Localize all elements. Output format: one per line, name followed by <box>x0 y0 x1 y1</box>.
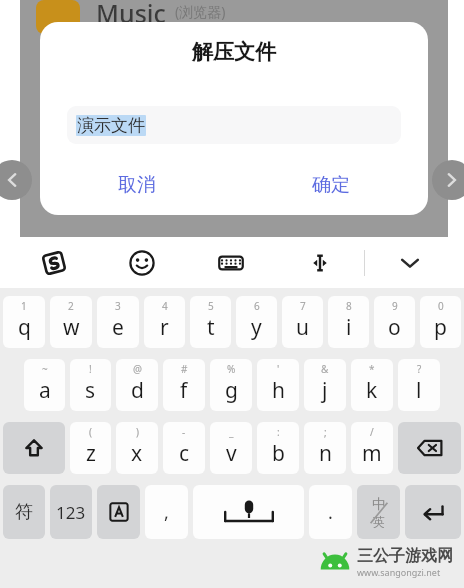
staticText: v <box>226 439 237 468</box>
button[interactable]: 4 <box>144 296 185 348</box>
staticText: Music <box>96 0 166 30</box>
button[interactable]: Delete <box>398 422 461 474</box>
button[interactable]: 3 <box>97 296 139 348</box>
button[interactable]: 7 <box>282 296 323 348</box>
staticText: e <box>112 313 124 342</box>
button[interactable]: 6 <box>236 296 277 348</box>
button[interactable]: Next <box>432 160 464 200</box>
button[interactable]: * <box>351 359 393 411</box>
staticText: u <box>296 313 309 342</box>
button[interactable]: Enter <box>405 485 461 539</box>
staticText: (浏览器) <box>175 2 226 21</box>
button[interactable]: Language <box>97 485 140 539</box>
button[interactable]: 取消 <box>40 160 234 210</box>
button[interactable]: _ <box>210 422 252 474</box>
staticText: 三公子游戏网 <box>357 546 453 566</box>
button[interactable]: ; <box>304 422 346 474</box>
staticText: 中 <box>372 496 386 514</box>
staticText: w <box>63 313 80 342</box>
staticText: c <box>179 439 190 468</box>
button[interactable]: 符 <box>3 485 45 539</box>
staticText: x <box>131 439 143 468</box>
staticText: y <box>251 313 262 342</box>
staticText: # <box>181 362 188 376</box>
staticText: ; <box>324 425 327 439</box>
button[interactable]: 9 <box>374 296 415 348</box>
button[interactable]: 确定 <box>234 160 428 210</box>
button[interactable]: ? <box>398 359 440 411</box>
staticText: g <box>225 376 238 405</box>
button[interactable]: 1 <box>3 296 45 348</box>
staticText: 演示文件 <box>77 115 145 136</box>
staticText: 取消 <box>118 173 156 197</box>
staticText: 8 <box>346 299 352 313</box>
button[interactable]: ~ <box>24 359 65 411</box>
staticText: ~ <box>42 362 48 376</box>
staticText: p <box>434 313 447 342</box>
staticText: k <box>366 376 378 405</box>
button[interactable]: Sogou input <box>10 238 98 288</box>
staticText: 2 <box>68 299 74 313</box>
button[interactable]: Emoji <box>98 238 186 288</box>
staticText: b <box>272 439 285 468</box>
button[interactable]: Previous <box>0 160 32 200</box>
button[interactable]: & <box>304 359 346 411</box>
button[interactable]: @ <box>116 359 158 411</box>
staticText: @ <box>133 362 142 376</box>
button[interactable]: 演示文件 <box>67 106 401 144</box>
staticText: j <box>322 376 328 405</box>
button[interactable]: ' <box>257 359 299 411</box>
staticText: 9 <box>392 299 398 313</box>
button[interactable]: ) <box>116 422 158 474</box>
button[interactable]: Chinese English <box>357 485 400 539</box>
staticText: l <box>416 376 422 405</box>
staticText: _ <box>229 425 234 439</box>
button[interactable]: Hide keyboard <box>365 238 454 288</box>
staticText: q <box>18 313 31 342</box>
staticText: * <box>369 362 375 376</box>
staticText: 5 <box>208 299 214 313</box>
staticText: h <box>272 376 285 405</box>
staticText: 确定 <box>312 173 350 197</box>
staticText: f <box>180 376 188 405</box>
staticText: www.sangongzi.net <box>357 566 441 578</box>
staticText: z <box>86 439 96 468</box>
staticText: 0 <box>438 299 444 313</box>
staticText: a <box>39 376 51 405</box>
staticText: : <box>277 425 280 439</box>
staticText: - <box>182 425 186 439</box>
button[interactable]: ! <box>70 359 111 411</box>
button[interactable]: Move cursor <box>275 238 364 288</box>
button[interactable]: ( <box>70 422 111 474</box>
staticText: % <box>227 362 236 376</box>
staticText: 6 <box>254 299 260 313</box>
staticText: 3 <box>115 299 121 313</box>
staticText: ? <box>417 362 422 376</box>
staticText: 符 <box>15 501 33 524</box>
staticText: r <box>160 313 169 342</box>
button[interactable]: 123 <box>50 485 92 539</box>
staticText: i <box>346 313 352 342</box>
staticText: n <box>319 439 332 468</box>
staticText: 7 <box>300 299 306 313</box>
button[interactable]: - <box>163 422 205 474</box>
button[interactable]: : <box>257 422 299 474</box>
button[interactable]: . <box>309 485 352 539</box>
staticText: 英 <box>373 514 385 529</box>
button[interactable]: Shift <box>3 422 65 474</box>
staticText: d <box>131 376 144 405</box>
button[interactable]: Keyboard <box>186 238 275 288</box>
button[interactable]: # <box>163 359 205 411</box>
staticText: 4 <box>162 299 168 313</box>
button[interactable]: % <box>210 359 252 411</box>
button[interactable]: / <box>351 422 393 474</box>
button[interactable]: 2 <box>50 296 92 348</box>
staticText: & <box>321 362 329 376</box>
button[interactable]: 8 <box>328 296 369 348</box>
button[interactable]: 0 <box>420 296 461 348</box>
staticText: 123 <box>56 501 86 524</box>
staticText: ' <box>277 362 280 376</box>
button[interactable]: Space <box>193 485 304 539</box>
button[interactable]: 5 <box>190 296 231 348</box>
button[interactable]: , <box>145 485 188 539</box>
